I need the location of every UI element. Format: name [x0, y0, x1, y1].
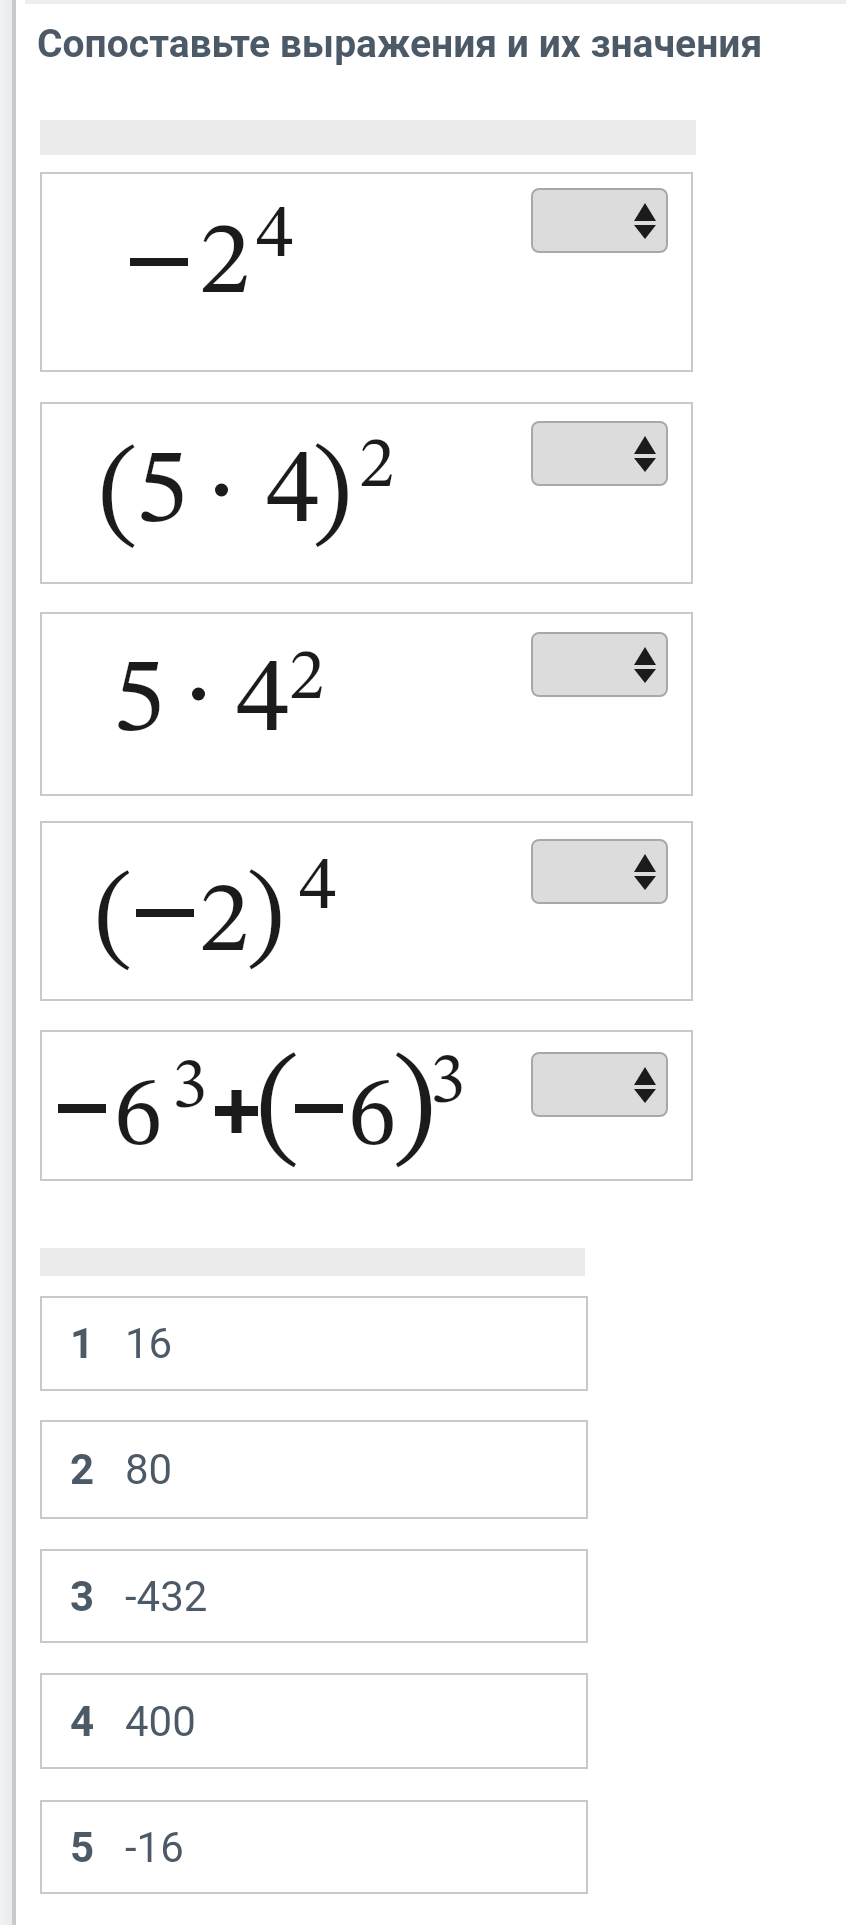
button[interactable]: 1: [40, 1296, 588, 1391]
button[interactable]: [531, 421, 668, 486]
staticText: 80: [125, 1445, 173, 1494]
staticText: 1: [70, 1319, 95, 1368]
staticText: 3: [70, 1572, 95, 1621]
staticText: 2: [70, 1445, 95, 1494]
staticText: 5: [70, 1823, 95, 1872]
staticText: 400: [125, 1697, 196, 1746]
staticText: 4: [70, 1697, 95, 1746]
staticText: -432: [125, 1572, 208, 1621]
button[interactable]: [531, 1052, 668, 1117]
button[interactable]: 3: [40, 1549, 588, 1643]
button[interactable]: 4: [40, 1673, 588, 1769]
button[interactable]: 2: [40, 1420, 588, 1519]
staticText: 16: [125, 1319, 173, 1368]
staticText: -16: [125, 1823, 184, 1872]
button[interactable]: [531, 839, 668, 904]
button[interactable]: [531, 632, 668, 697]
button[interactable]: [531, 188, 668, 253]
button[interactable]: 5: [40, 1800, 588, 1894]
staticText: Сопоставьте выражения и их значения: [37, 21, 763, 67]
